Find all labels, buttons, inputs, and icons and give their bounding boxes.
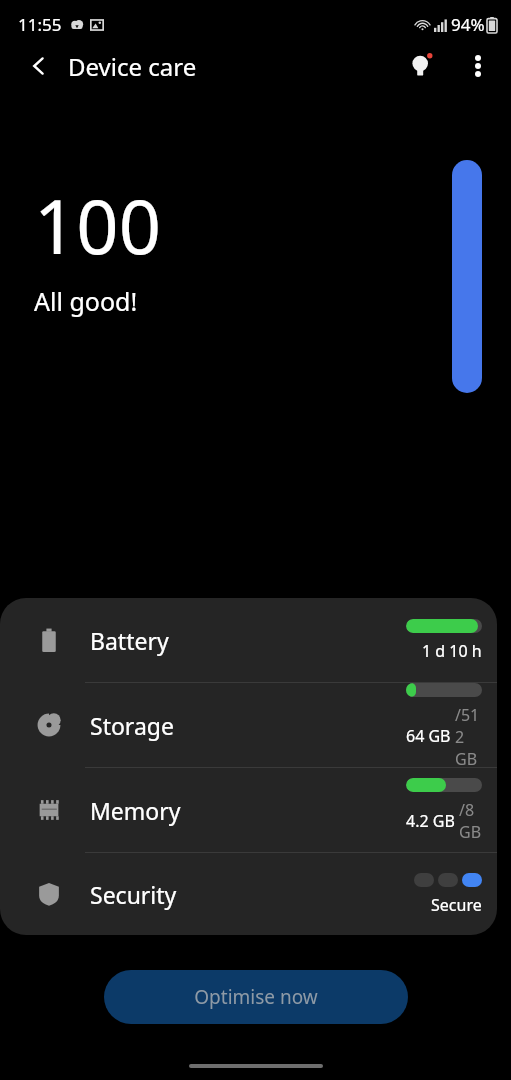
button[interactable]: Battery [0, 598, 497, 682]
staticText: Memory [90, 795, 181, 826]
button[interactable]: More options [455, 43, 501, 89]
staticText: /512 GB [455, 704, 482, 767]
staticText: 64 GB [406, 725, 455, 747]
staticText: 4.2 GB [406, 810, 459, 832]
staticText: /8 GB [459, 799, 482, 843]
staticText: 1 d 10 h [422, 640, 482, 662]
staticText: Storage [90, 710, 174, 741]
staticText: 100 [34, 175, 161, 276]
staticText: 11:55 [18, 13, 62, 36]
staticText: Secure [431, 894, 482, 916]
staticText: 94% [451, 13, 485, 36]
staticText: Optimise now [194, 984, 318, 1010]
button[interactable]: Optimise now [104, 970, 408, 1024]
staticText: Battery [90, 625, 169, 656]
button[interactable]: Storage [0, 683, 497, 767]
button[interactable]: Memory [0, 768, 497, 852]
staticText: Device care [68, 50, 197, 83]
button[interactable]: Back [16, 43, 62, 89]
button[interactable]: Tips [399, 43, 445, 89]
staticText: All good! [34, 284, 138, 318]
button[interactable]: Security [0, 853, 497, 935]
staticText: Security [90, 879, 177, 910]
